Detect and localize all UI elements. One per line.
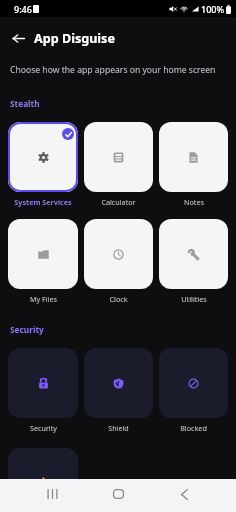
button[interactable]: Home [100, 479, 136, 509]
button[interactable] [8, 348, 78, 418]
button[interactable] [84, 122, 153, 192]
staticText: 9:46 [14, 3, 32, 15]
button[interactable] [8, 122, 78, 192]
staticText: Notes [184, 197, 204, 207]
staticText: Security [10, 324, 44, 335]
button[interactable] [84, 348, 153, 418]
staticText: Choose how the app appears on your home … [10, 64, 216, 76]
button[interactable]: Recent apps [34, 479, 70, 509]
staticText: System Services [14, 197, 72, 207]
staticText: Shield [108, 423, 129, 433]
staticText: App Disguise [34, 30, 115, 46]
button[interactable] [159, 122, 228, 192]
button[interactable] [8, 219, 78, 289]
button[interactable]: Back [10, 30, 26, 46]
staticText: Blocked [180, 423, 207, 433]
staticText: Security [30, 423, 57, 433]
button[interactable] [159, 219, 228, 289]
staticText: Clock [109, 294, 128, 304]
staticText: My Files [30, 294, 57, 304]
button[interactable] [84, 219, 153, 289]
staticText: Stealth [10, 98, 40, 109]
button[interactable] [159, 348, 228, 418]
button[interactable]: Back [166, 479, 202, 509]
staticText: 100% [201, 3, 225, 15]
staticText: Calculator [101, 197, 136, 207]
staticText: Utilities [181, 294, 207, 304]
button[interactable] [8, 448, 78, 512]
